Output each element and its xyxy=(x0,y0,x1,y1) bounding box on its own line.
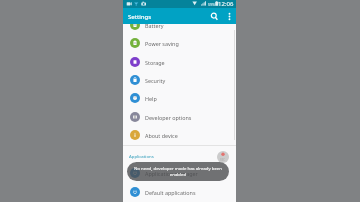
button[interactable]: About device xyxy=(123,126,236,144)
staticText: Security xyxy=(145,77,166,84)
button[interactable]: Help xyxy=(123,89,236,107)
staticText: Default applications xyxy=(145,189,196,196)
staticText: REC xyxy=(220,158,226,162)
button[interactable]: Developer options xyxy=(123,108,236,126)
staticText: Battery xyxy=(145,22,164,29)
button[interactable]: Power saving xyxy=(123,34,236,52)
staticText: 12:06 xyxy=(218,0,234,8)
staticText: Application manager xyxy=(145,170,198,177)
staticText: Power saving xyxy=(145,40,179,47)
button[interactable]: More options xyxy=(223,10,235,22)
staticText: No need, developer mode has already been… xyxy=(130,165,226,178)
button[interactable]: Battery xyxy=(123,16,236,34)
staticText: Applications xyxy=(129,153,154,159)
button[interactable]: Application manager xyxy=(123,164,236,182)
button[interactable]: Security xyxy=(123,71,236,89)
staticText: Settings xyxy=(128,12,152,20)
staticText: 59% xyxy=(208,2,216,7)
staticText: Help xyxy=(145,95,157,102)
button[interactable]: Search xyxy=(207,9,221,23)
staticText: Storage xyxy=(145,59,165,66)
staticText: About device xyxy=(145,132,178,139)
staticText: Developer options xyxy=(145,114,192,121)
button[interactable]: Default applications xyxy=(123,183,236,201)
button[interactable]: Storage xyxy=(123,53,236,71)
